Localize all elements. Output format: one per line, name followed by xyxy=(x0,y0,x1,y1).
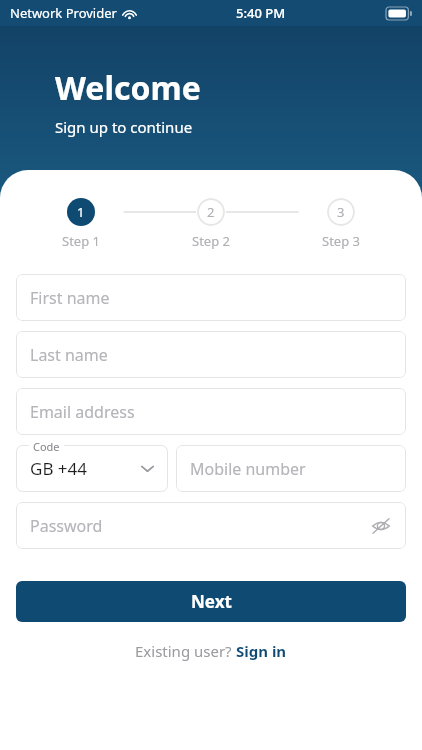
staticText: 3 xyxy=(337,203,345,221)
button[interactable]: Password xyxy=(16,502,406,549)
staticText: Step 2 xyxy=(192,232,230,250)
staticText: 2 xyxy=(207,203,215,221)
staticText: GB +44 xyxy=(30,457,88,480)
staticText: 1 xyxy=(77,203,85,221)
staticText: Email address xyxy=(30,401,135,423)
staticText: Welcome xyxy=(55,66,201,110)
staticText: Sign in xyxy=(236,641,287,661)
staticText: First name xyxy=(30,287,110,309)
button[interactable]: Last name xyxy=(16,331,406,378)
staticText: Existing user? xyxy=(135,641,236,661)
button[interactable]: 1 xyxy=(16,198,146,250)
button[interactable]: Next xyxy=(16,581,406,622)
staticText: Password xyxy=(30,515,103,537)
staticText: Step 1 xyxy=(62,232,100,250)
staticText: Code xyxy=(33,439,60,454)
staticText: Sign up to continue xyxy=(55,117,193,137)
button[interactable]: 2 xyxy=(146,198,276,250)
other: Select country code xyxy=(139,460,156,477)
button[interactable]: First name xyxy=(16,274,406,321)
staticText: 5:40 PM xyxy=(236,4,286,22)
staticText: Step 3 xyxy=(322,232,360,250)
staticText: Last name xyxy=(30,344,108,366)
button[interactable]: Show password xyxy=(368,513,394,539)
button[interactable]: 3 xyxy=(276,198,406,250)
button[interactable]: Code xyxy=(16,445,168,492)
staticText: Network Provider xyxy=(10,4,117,22)
button[interactable]: Email address xyxy=(16,388,406,435)
button[interactable]: Existing user? xyxy=(0,637,422,665)
button[interactable]: Mobile number xyxy=(176,445,406,492)
staticText: Mobile number xyxy=(190,458,306,480)
staticText: Next xyxy=(191,590,232,613)
